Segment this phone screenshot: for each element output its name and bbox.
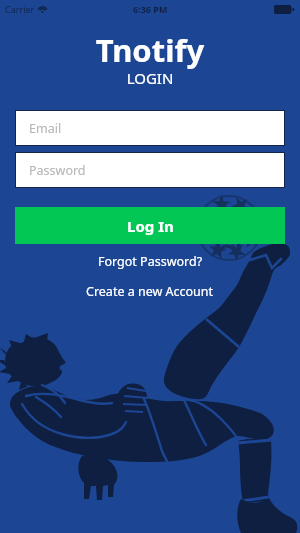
staticText: Forgot Password? bbox=[98, 253, 203, 270]
button[interactable]: Forgot Password? bbox=[0, 250, 300, 273]
staticText: 6:36 PM bbox=[133, 3, 168, 15]
staticText: Tnotify bbox=[0, 29, 300, 71]
staticText: LOGIN bbox=[0, 68, 300, 88]
button[interactable]: Create a new Account bbox=[0, 280, 300, 303]
button[interactable]: Password bbox=[15, 152, 285, 188]
staticText: Create a new Account bbox=[86, 283, 214, 300]
button[interactable]: Email bbox=[15, 110, 285, 146]
button[interactable]: Log In bbox=[15, 207, 285, 244]
staticText: Password bbox=[29, 162, 86, 179]
staticText: Email bbox=[29, 120, 62, 137]
other: Battery bbox=[274, 5, 294, 14]
staticText: Log In bbox=[127, 216, 174, 236]
staticText: Carrier bbox=[5, 3, 35, 15]
other: Wi-Fi bbox=[38, 5, 47, 14]
